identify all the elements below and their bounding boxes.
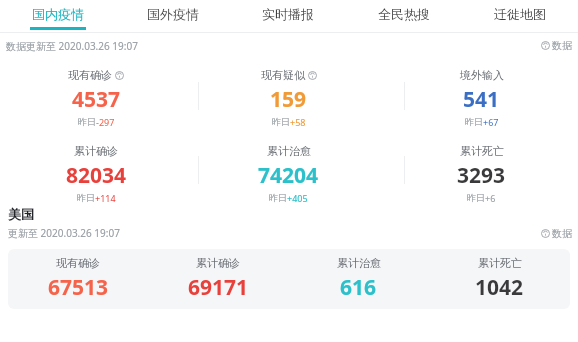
button[interactable]: 累计死亡: [385, 144, 578, 204]
staticText: 累计死亡: [460, 144, 504, 158]
button[interactable]: 数据: [541, 39, 572, 52]
staticText: 累计死亡: [478, 256, 522, 270]
button[interactable]: 国内疫情: [0, 0, 115, 30]
staticText: +405: [287, 192, 308, 204]
button[interactable]: 累计治愈: [288, 256, 429, 302]
staticText: 159: [270, 85, 307, 114]
button[interactable]: 现有确诊: [8, 249, 570, 309]
staticText: 累计治愈: [267, 144, 311, 158]
staticText: 迁徙地图: [494, 6, 546, 22]
staticText: 国外疫情: [147, 6, 199, 22]
staticText: 616: [340, 273, 377, 302]
button[interactable]: 累计死亡: [429, 256, 570, 302]
staticText: 累计治愈: [337, 256, 381, 270]
button[interactable]: 累计确诊: [148, 256, 288, 302]
staticText: 昨日: [269, 192, 287, 203]
staticText: 现有确诊: [68, 68, 112, 82]
button[interactable]: 迁徙地图: [462, 0, 578, 30]
staticText: +6: [485, 192, 496, 204]
button[interactable]: 数据: [541, 227, 572, 240]
staticText: 境外输入: [460, 68, 504, 82]
button[interactable]: 全民热搜: [346, 0, 462, 30]
staticText: 昨日: [78, 116, 96, 127]
staticText: 541: [463, 85, 500, 114]
staticText: 全民热搜: [378, 6, 430, 22]
button[interactable]: 现有确诊: [0, 68, 192, 128]
button[interactable]: 国外疫情: [115, 0, 230, 30]
staticText: 昨日: [465, 116, 483, 127]
staticText: 82034: [66, 161, 127, 190]
staticText: 昨日: [467, 192, 485, 203]
button[interactable]: 累计确诊: [0, 144, 192, 204]
staticText: 国内疫情: [32, 6, 84, 22]
staticText: 现有疑似: [261, 68, 305, 82]
staticText: -297: [96, 116, 115, 128]
staticText: 昨日: [77, 192, 95, 203]
staticText: 实时播报: [262, 6, 314, 22]
staticText: 累计确诊: [74, 144, 118, 158]
staticText: 69171: [188, 273, 249, 302]
staticText: 现有确诊: [56, 256, 100, 270]
staticText: +58: [290, 116, 306, 128]
staticText: 数据更新至 2020.03.26 19:07: [6, 39, 138, 53]
button[interactable]: 实时播报: [230, 0, 346, 30]
button[interactable]: 现有确诊: [8, 256, 148, 302]
button[interactable]: 累计治愈: [192, 144, 385, 204]
staticText: 美国: [8, 206, 34, 222]
staticText: 67513: [48, 273, 109, 302]
button[interactable]: 境外输入: [385, 68, 578, 128]
staticText: 74204: [258, 161, 319, 190]
button[interactable]: 现有疑似: [192, 68, 385, 128]
staticText: 累计确诊: [196, 256, 240, 270]
staticText: +67: [483, 116, 499, 128]
staticText: 数据: [552, 227, 572, 240]
staticText: 1042: [475, 273, 524, 302]
staticText: 昨日: [272, 116, 290, 127]
staticText: 4537: [72, 85, 121, 114]
staticText: 3293: [457, 161, 506, 190]
staticText: +114: [95, 192, 116, 204]
staticText: 更新至 2020.03.26 19:07: [8, 226, 120, 240]
staticText: 数据: [552, 39, 572, 52]
